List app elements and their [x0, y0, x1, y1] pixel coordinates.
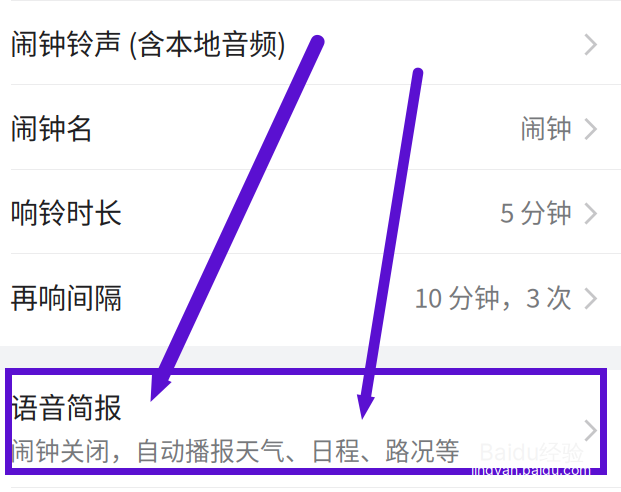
button[interactable]: 再响间隔: [0, 254, 621, 339]
button[interactable]: 响铃时长: [0, 170, 621, 254]
staticText: Baidu经验: [479, 439, 585, 467]
staticText: jingyan.baidu.com: [471, 461, 591, 478]
staticText: 语音简报: [10, 386, 122, 426]
staticText: 5 分钟: [500, 193, 572, 230]
staticText: 响铃时长: [10, 191, 122, 232]
staticText: 闹钟: [520, 108, 572, 146]
staticText: 10 分钟，3 次: [414, 278, 572, 315]
staticText: 再响间隔: [10, 276, 122, 317]
button[interactable]: 闹钟铃声 (含本地音频): [0, 1, 621, 85]
staticText: 闹钟铃声 (含本地音频): [10, 22, 286, 63]
button[interactable]: 闹钟名: [0, 85, 621, 170]
staticText: 闹钟关闭，自动播报天气、日程、路况等: [10, 431, 460, 467]
staticText: 闹钟名: [10, 107, 94, 147]
button[interactable]: 语音简报: [0, 370, 621, 488]
